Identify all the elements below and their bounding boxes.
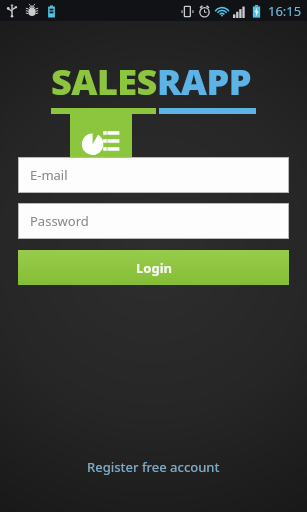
staticText: RAPP [157,57,252,106]
button[interactable]: E-mail [19,158,288,192]
button[interactable]: Password [19,204,288,238]
staticText: Password [30,212,89,230]
staticText: SALES [51,57,157,106]
staticText: Login [136,259,172,277]
staticText: E-mail [30,166,68,184]
button[interactable]: Login [18,250,289,285]
staticText: 16:15 [268,2,302,20]
button[interactable]: Register free account [71,452,236,482]
staticText: Register free account [87,458,220,476]
